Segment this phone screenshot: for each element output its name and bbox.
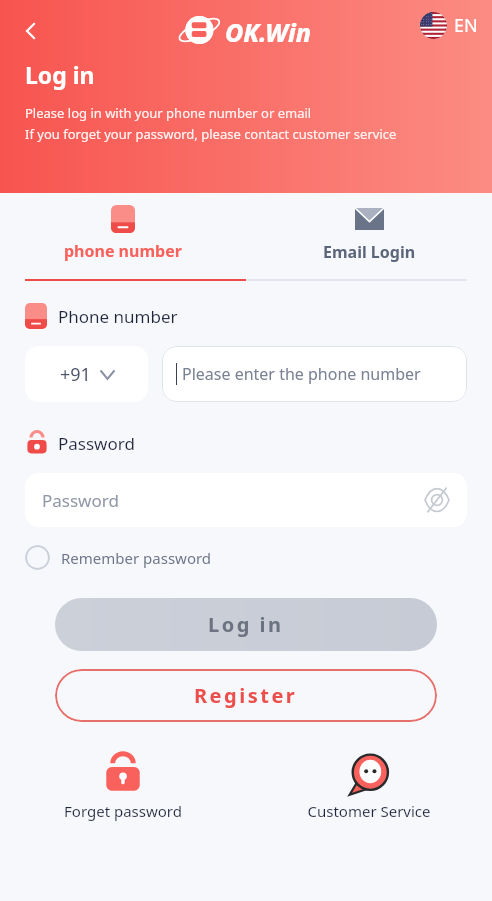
button[interactable]: Forget password	[0, 752, 246, 821]
button[interactable]: Please enter the phone number	[162, 346, 467, 402]
button[interactable]: Register	[55, 669, 437, 722]
staticText: Password	[42, 489, 119, 512]
staticText: Password	[58, 432, 135, 455]
staticText: Phone number	[58, 305, 178, 328]
staticText: Email Login	[323, 241, 416, 263]
staticText: Please log in with your phone number or …	[25, 104, 312, 122]
staticText: Forget password	[64, 801, 182, 821]
button[interactable]: Remember password	[25, 545, 212, 570]
staticText: phone number	[64, 240, 182, 262]
button[interactable]: Password	[25, 473, 467, 527]
button[interactable]: Email Login	[246, 193, 492, 281]
button[interactable]: Customer Service	[246, 752, 492, 821]
staticText: Remember password	[61, 548, 212, 568]
staticText: Log in	[208, 611, 284, 638]
staticText: Log in	[25, 59, 95, 90]
staticText: Customer Service	[307, 801, 431, 821]
button[interactable]: Log in	[55, 598, 437, 651]
staticText: +91	[60, 362, 91, 387]
button[interactable]: Show password	[417, 480, 457, 520]
staticText: OK.Win	[225, 15, 312, 49]
button[interactable]: phone number	[0, 193, 246, 281]
button[interactable]: +91	[25, 346, 148, 402]
button[interactable]: Back	[10, 10, 52, 52]
staticText: EN	[454, 13, 478, 38]
staticText: Please enter the phone number	[182, 363, 421, 385]
staticText: If you forget your password, please cont…	[25, 125, 397, 143]
staticText: Register	[194, 682, 298, 709]
button[interactable]: EN	[420, 12, 478, 39]
